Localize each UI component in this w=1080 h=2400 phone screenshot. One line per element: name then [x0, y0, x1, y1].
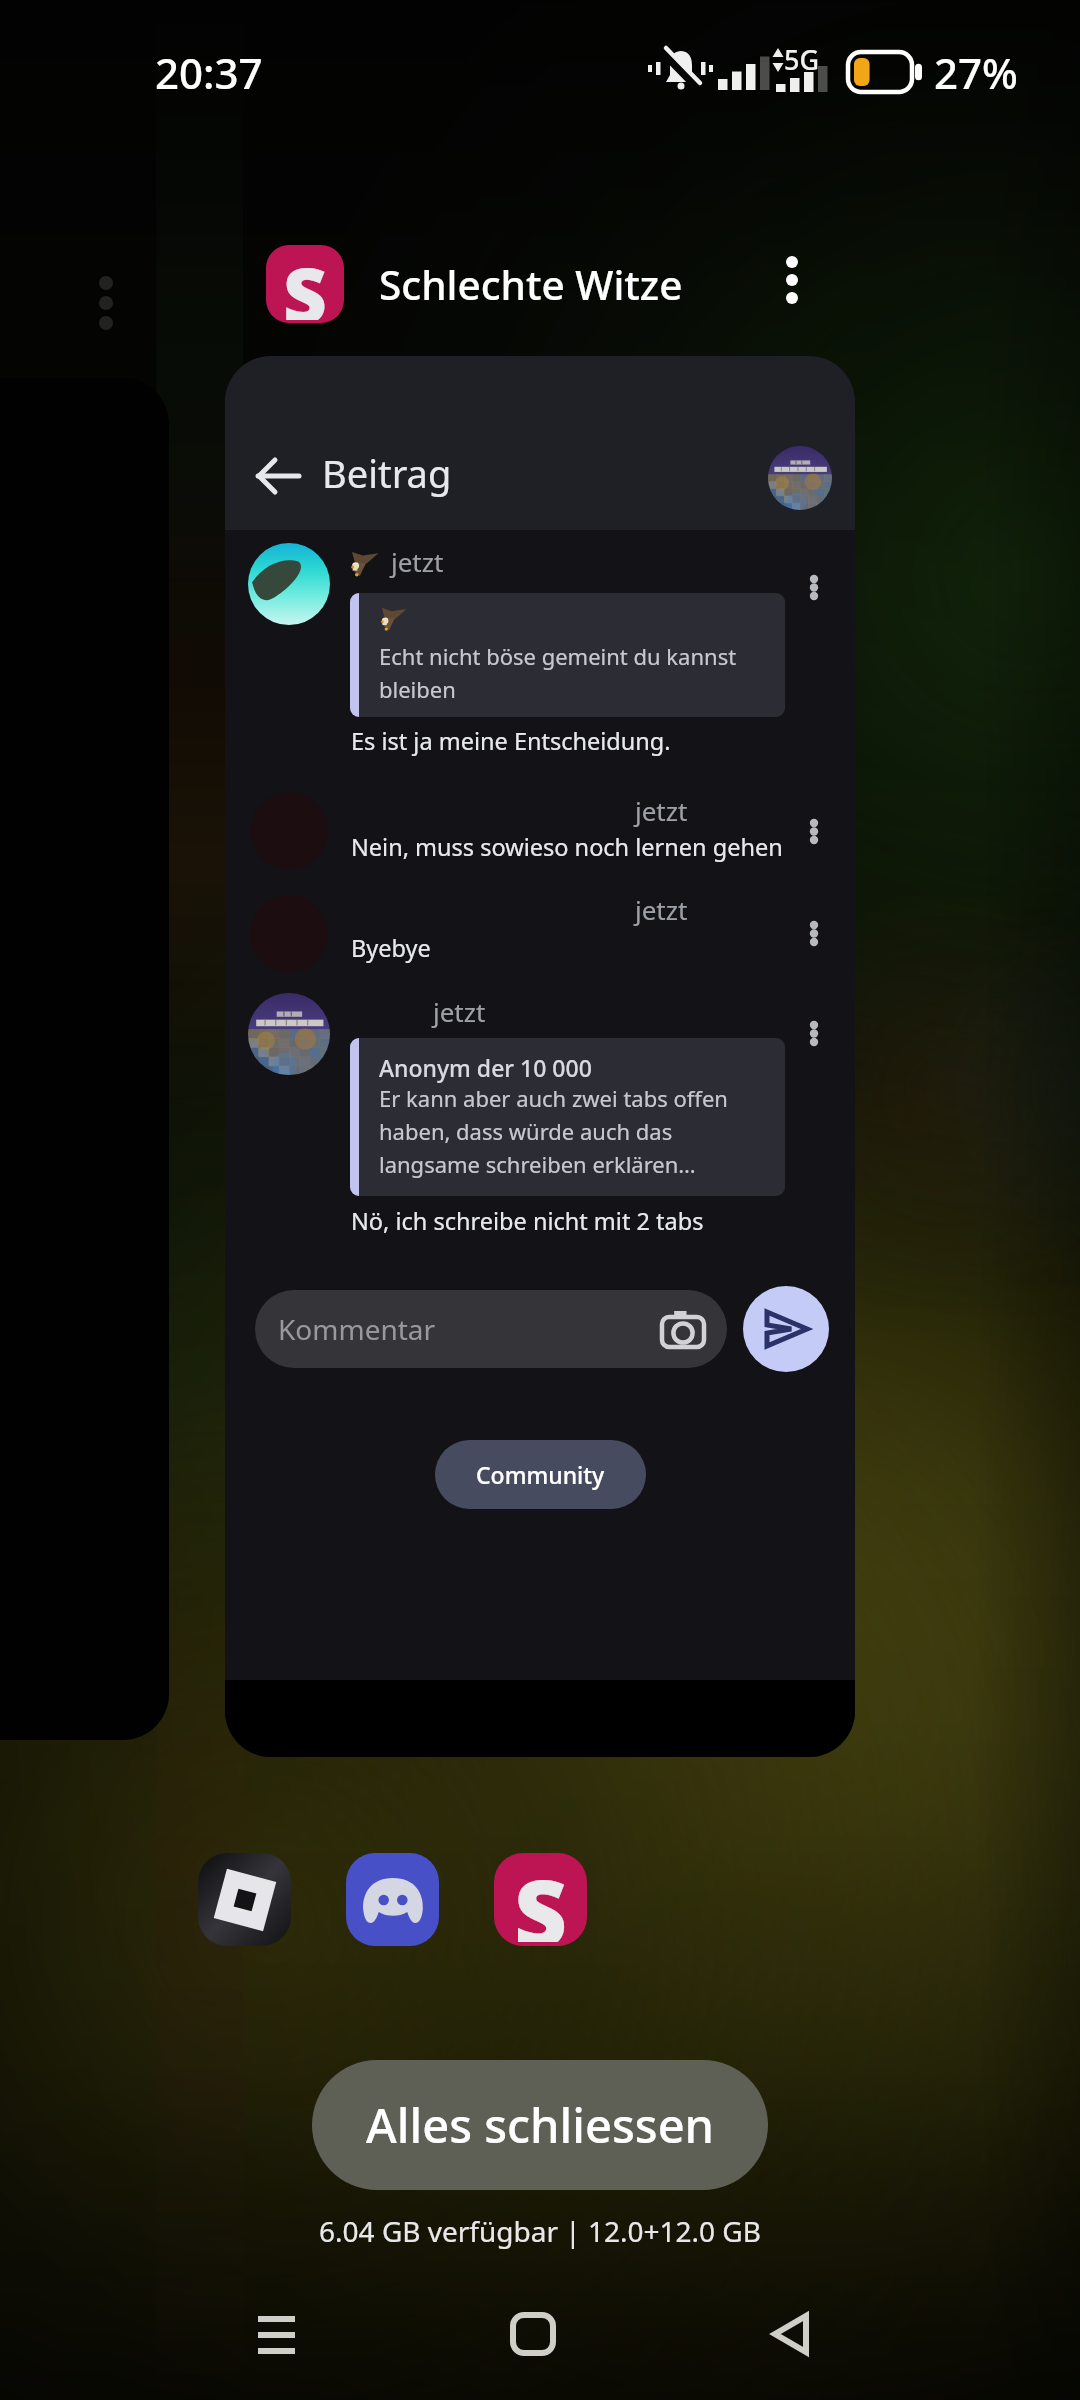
button[interactable]: Comment options: [792, 1009, 836, 1057]
button[interactable]: Send: [743, 1286, 829, 1372]
staticText: Es ist ja meine Entscheidung.: [351, 725, 671, 757]
button[interactable]: Alles schliessen: [312, 2060, 768, 2190]
staticText: Er kann aber auch zwei tabs offen haben,…: [379, 1083, 769, 1179]
other: Add photo: [661, 1309, 705, 1349]
button[interactable]: Comment options: [792, 807, 836, 855]
button[interactable]: Back: [245, 443, 311, 509]
button[interactable]: Previous app options: [82, 262, 130, 344]
staticText: jetzt: [391, 544, 444, 579]
button[interactable]: Schlechte Witze app preview: [225, 356, 855, 1757]
button[interactable]: Back: [735, 2279, 845, 2389]
button[interactable]: More options: [753, 243, 831, 321]
staticText: S: [514, 1853, 568, 1942]
staticText: jetzt: [635, 892, 688, 927]
button[interactable]: Comment options: [792, 909, 836, 957]
staticText: Echt nicht böse gemeint du kannst bleibe…: [379, 641, 769, 704]
staticText: Alles schliessen: [366, 2093, 715, 2157]
staticText: Byebye: [351, 932, 431, 964]
staticText: jetzt: [635, 793, 688, 828]
button[interactable]: Comment options: [792, 563, 836, 611]
button[interactable]: Kommentar: [255, 1290, 727, 1368]
button[interactable]: Home: [478, 2279, 588, 2389]
staticText: Community: [476, 1459, 605, 1490]
staticText: Anonym der 10 000: [379, 1052, 592, 1083]
staticText: S: [283, 245, 327, 320]
button[interactable]: Roblox: [198, 1853, 291, 1946]
staticText: jetzt: [433, 994, 486, 1029]
button[interactable]: S: [266, 245, 683, 323]
staticText: Schlechte Witze: [379, 257, 683, 312]
staticText: Nö, ich schreibe nicht mit 2 tabs: [351, 1205, 704, 1237]
button[interactable]: Community: [435, 1440, 646, 1509]
staticText: 27%: [934, 44, 1018, 101]
button[interactable]: Schlechte Witze: [494, 1853, 587, 1946]
staticText: Nein, muss sowieso noch lernen gehen: [351, 831, 783, 863]
staticText: 5G: [784, 41, 820, 78]
staticText: 20:37: [155, 44, 263, 101]
button[interactable]: Recent apps: [221, 2279, 331, 2389]
staticText: 6.04 GB verfügbar | 12.0+12.0 GB: [319, 2212, 761, 2250]
staticText: Kommentar: [278, 1310, 436, 1348]
staticText: Beitrag: [322, 447, 452, 499]
button[interactable]: Discord: [346, 1853, 439, 1946]
